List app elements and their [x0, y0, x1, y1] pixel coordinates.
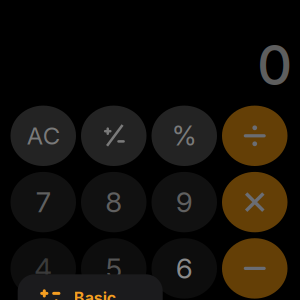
staticText: Basic	[74, 288, 116, 300]
staticText: AC	[27, 121, 60, 150]
button[interactable]: Multiply	[222, 172, 287, 232]
staticText: 9	[176, 185, 193, 219]
button[interactable]: 6	[151, 238, 217, 299]
button[interactable]: Change sign	[81, 106, 146, 166]
button[interactable]: Divide	[222, 106, 287, 166]
button[interactable]: 7	[10, 172, 76, 232]
button[interactable]: Subtract	[222, 238, 287, 299]
button[interactable]: 4	[10, 238, 76, 299]
staticText: 8	[105, 185, 122, 219]
button[interactable]: 8	[81, 172, 146, 232]
staticText: %	[172, 120, 197, 152]
button[interactable]: Basic	[18, 274, 163, 300]
staticText: 0	[257, 32, 292, 98]
staticText: 5	[106, 251, 122, 285]
staticText: 7	[36, 185, 51, 219]
staticText: 6	[176, 251, 193, 285]
button[interactable]: %	[151, 106, 217, 166]
staticText: 4	[34, 251, 52, 285]
button[interactable]: 5	[81, 238, 146, 299]
button[interactable]: 9	[151, 172, 217, 232]
button[interactable]: AC	[10, 106, 76, 166]
